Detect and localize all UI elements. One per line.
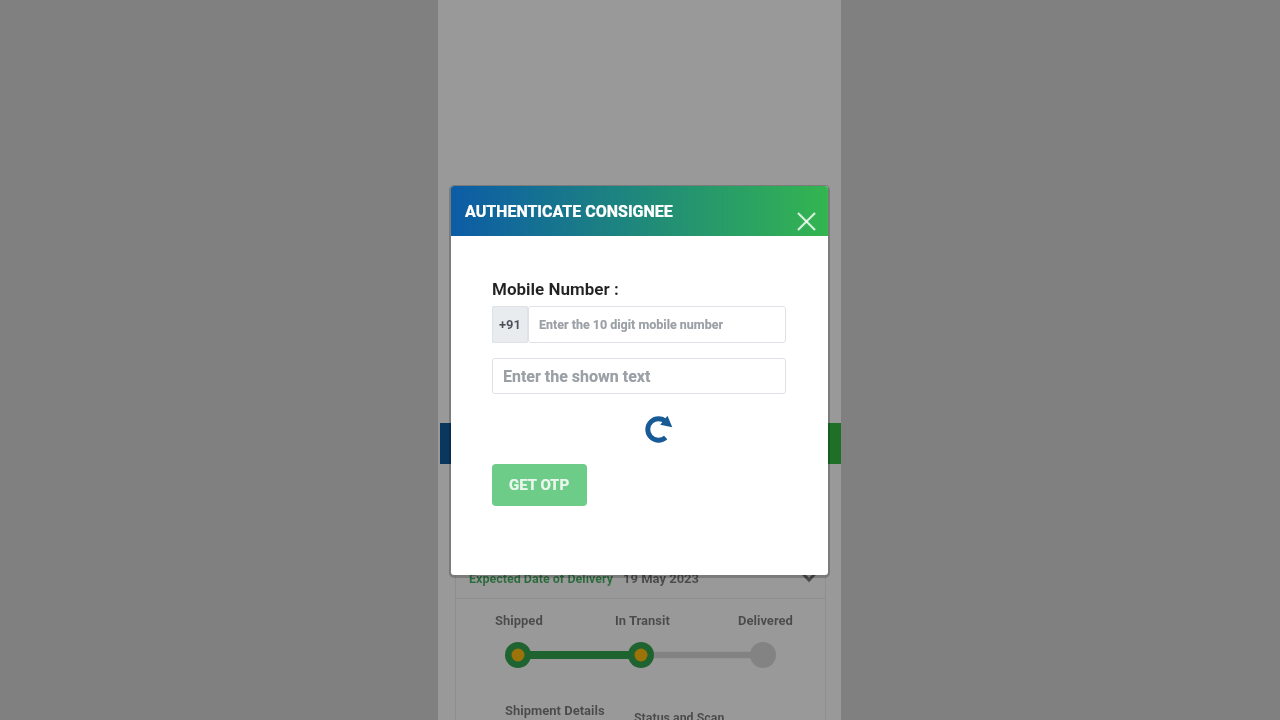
staticText: Enter the shown text xyxy=(503,367,651,386)
staticText: Status and Scan xyxy=(634,710,725,720)
button[interactable]: Close xyxy=(795,210,818,233)
staticText: GET OTP xyxy=(509,476,570,494)
staticText: Enter the 10 digit mobile number xyxy=(539,317,724,332)
staticText: 19 May 2023 xyxy=(623,571,700,586)
staticText: Expected Date of Delivery xyxy=(469,571,613,586)
button[interactable]: Enter the shown text xyxy=(492,358,786,394)
button[interactable]: GET OTP xyxy=(492,464,587,506)
staticText: Shipment Details xyxy=(505,703,605,718)
staticText: AUTHENTICATE CONSIGNEE xyxy=(465,202,673,221)
staticText: In Transit xyxy=(615,613,670,628)
button[interactable]: Enter the 10 digit mobile number xyxy=(528,306,786,343)
staticText: Mobile Number : xyxy=(492,279,619,299)
button[interactable]: Refresh captcha xyxy=(642,413,675,446)
staticText: Delivered xyxy=(738,613,793,628)
staticText: +91 xyxy=(499,317,522,332)
staticText: Shipped xyxy=(495,613,543,628)
